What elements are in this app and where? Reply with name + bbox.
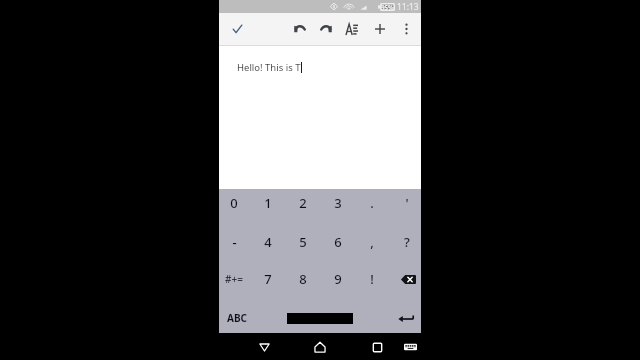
staticText: 2 — [299, 194, 307, 212]
button[interactable]: Formatting — [343, 20, 361, 38]
button[interactable]: ' — [391, 188, 423, 218]
button[interactable]: ABC — [221, 303, 253, 333]
button[interactable]: 8 — [287, 264, 319, 294]
button[interactable]: Backspace — [391, 264, 423, 294]
button[interactable]: Home — [309, 336, 331, 358]
button[interactable]: 2 — [287, 188, 319, 218]
button[interactable]: 9 — [322, 264, 354, 294]
staticText: 7 — [264, 270, 272, 288]
button[interactable]: #+= — [218, 264, 250, 294]
button[interactable]: 5 — [287, 227, 319, 257]
staticText: ! — [370, 270, 374, 288]
button[interactable]: ? — [391, 227, 423, 257]
button[interactable]: Switch keyboard — [400, 336, 421, 358]
staticText: 3 — [334, 194, 342, 212]
staticText: ? — [404, 233, 410, 251]
staticText: 9 — [334, 270, 342, 288]
button[interactable]: Recents — [366, 336, 388, 358]
staticText: Hello! This is T — [237, 61, 301, 74]
button[interactable]: Enter — [391, 303, 423, 333]
staticText: 5 — [299, 233, 307, 251]
button[interactable]: Redo — [317, 20, 335, 38]
staticText: 4 — [264, 233, 272, 251]
staticText: 1 — [264, 194, 272, 212]
button[interactable]: 6 — [322, 227, 354, 257]
button[interactable]: 7 — [252, 264, 284, 294]
button[interactable]: ! — [356, 264, 388, 294]
staticText: 11:13 — [397, 1, 419, 13]
button[interactable]: . — [356, 188, 388, 218]
staticText: #+= — [225, 272, 243, 286]
button[interactable]: Done — [228, 20, 246, 38]
button[interactable]: 4 — [252, 227, 284, 257]
staticText: ' — [405, 194, 409, 212]
staticText: 95% — [381, 3, 394, 11]
button[interactable]: Back — [253, 336, 275, 358]
staticText: ABC — [227, 311, 247, 325]
button[interactable]: 0 — [218, 188, 250, 218]
button[interactable]: 3 — [322, 188, 354, 218]
button[interactable]: More options — [397, 20, 415, 38]
button[interactable]: - — [218, 227, 250, 257]
staticText: 6 — [334, 233, 342, 251]
staticText: , — [370, 233, 374, 251]
button[interactable]: Space — [287, 303, 353, 333]
button[interactable]: Add — [371, 20, 389, 38]
button[interactable]: 1 — [252, 188, 284, 218]
staticText: 8 — [299, 270, 307, 288]
button[interactable]: , — [356, 227, 388, 257]
staticText: 0 — [230, 194, 238, 212]
staticText: - — [232, 233, 237, 251]
button[interactable]: Undo — [290, 20, 308, 38]
staticText: . — [370, 194, 374, 212]
